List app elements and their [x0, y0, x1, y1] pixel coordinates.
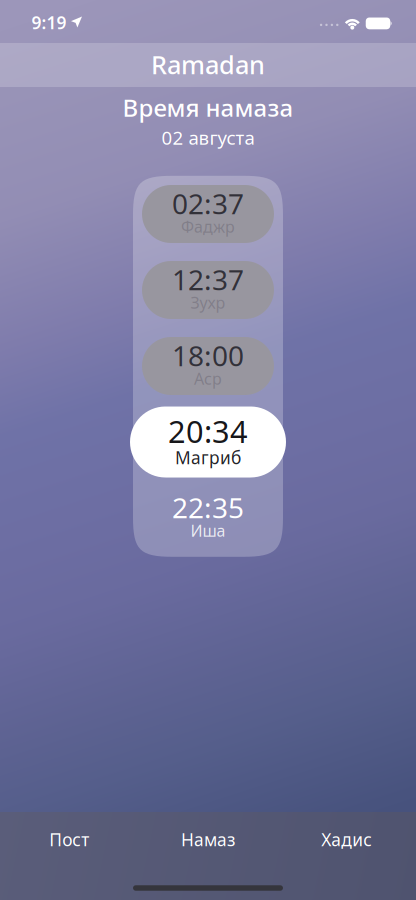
button[interactable]: Хадис — [277, 812, 416, 900]
staticText: Ramadan — [151, 48, 265, 81]
staticText: Магриб — [175, 446, 241, 469]
staticText: Пост — [49, 828, 89, 851]
staticText: 20:34 — [168, 411, 248, 451]
button[interactable]: 20:34 — [130, 406, 286, 477]
button[interactable]: Намаз — [139, 812, 277, 900]
button[interactable]: 02:37 — [142, 185, 274, 243]
button[interactable]: 22:35 — [142, 489, 274, 547]
staticText: Фаджр — [181, 216, 235, 237]
staticText: 18:00 — [172, 337, 244, 374]
staticText: Аср — [194, 368, 222, 389]
staticText: Зухр — [190, 292, 225, 313]
button[interactable]: 12:37 — [142, 261, 274, 319]
staticText: Хадис — [321, 828, 372, 851]
staticText: 9:19 — [31, 11, 66, 34]
staticText: 22:35 — [172, 489, 244, 526]
staticText: Время намаза — [122, 92, 293, 123]
staticText: Намаз — [181, 828, 235, 851]
button[interactable]: Пост — [0, 812, 139, 900]
staticText: 02:37 — [172, 185, 244, 222]
button[interactable]: 18:00 — [142, 337, 274, 395]
staticText: 02 августа — [161, 125, 254, 150]
staticText: Иша — [190, 520, 225, 541]
staticText: 12:37 — [172, 261, 244, 298]
